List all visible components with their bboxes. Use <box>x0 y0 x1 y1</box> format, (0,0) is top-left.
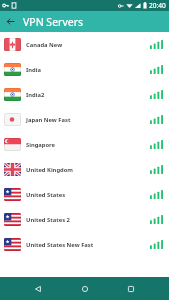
staticText: Singapore <box>26 141 56 149</box>
button[interactable]: United States New Fast <box>0 232 169 257</box>
button[interactable]: United Kingdom <box>0 157 169 182</box>
staticText: United States 2 <box>26 216 70 224</box>
staticText: United States New Fast <box>26 241 94 249</box>
button[interactable]: Recents <box>124 282 138 296</box>
staticText: India <box>26 66 41 74</box>
staticText: 20:40 <box>149 1 166 10</box>
button[interactable]: Canada New <box>0 32 169 57</box>
button[interactable]: United States <box>0 182 169 207</box>
button[interactable]: Japan New Fast <box>0 107 169 132</box>
staticText: India2 <box>26 91 45 99</box>
staticText: VPN Servers <box>23 15 84 29</box>
button[interactable]: Back <box>0 11 21 32</box>
button[interactable]: India <box>0 57 169 82</box>
staticText: United Kingdom <box>26 166 73 174</box>
button[interactable]: Singapore <box>0 132 169 157</box>
button[interactable]: Home <box>78 282 92 296</box>
button[interactable]: United States 2 <box>0 207 169 232</box>
button[interactable]: India2 <box>0 82 169 107</box>
staticText: Japan New Fast <box>26 116 71 124</box>
staticText: United States <box>26 191 66 199</box>
button[interactable]: Back <box>31 282 45 296</box>
staticText: Canada New <box>26 41 63 49</box>
